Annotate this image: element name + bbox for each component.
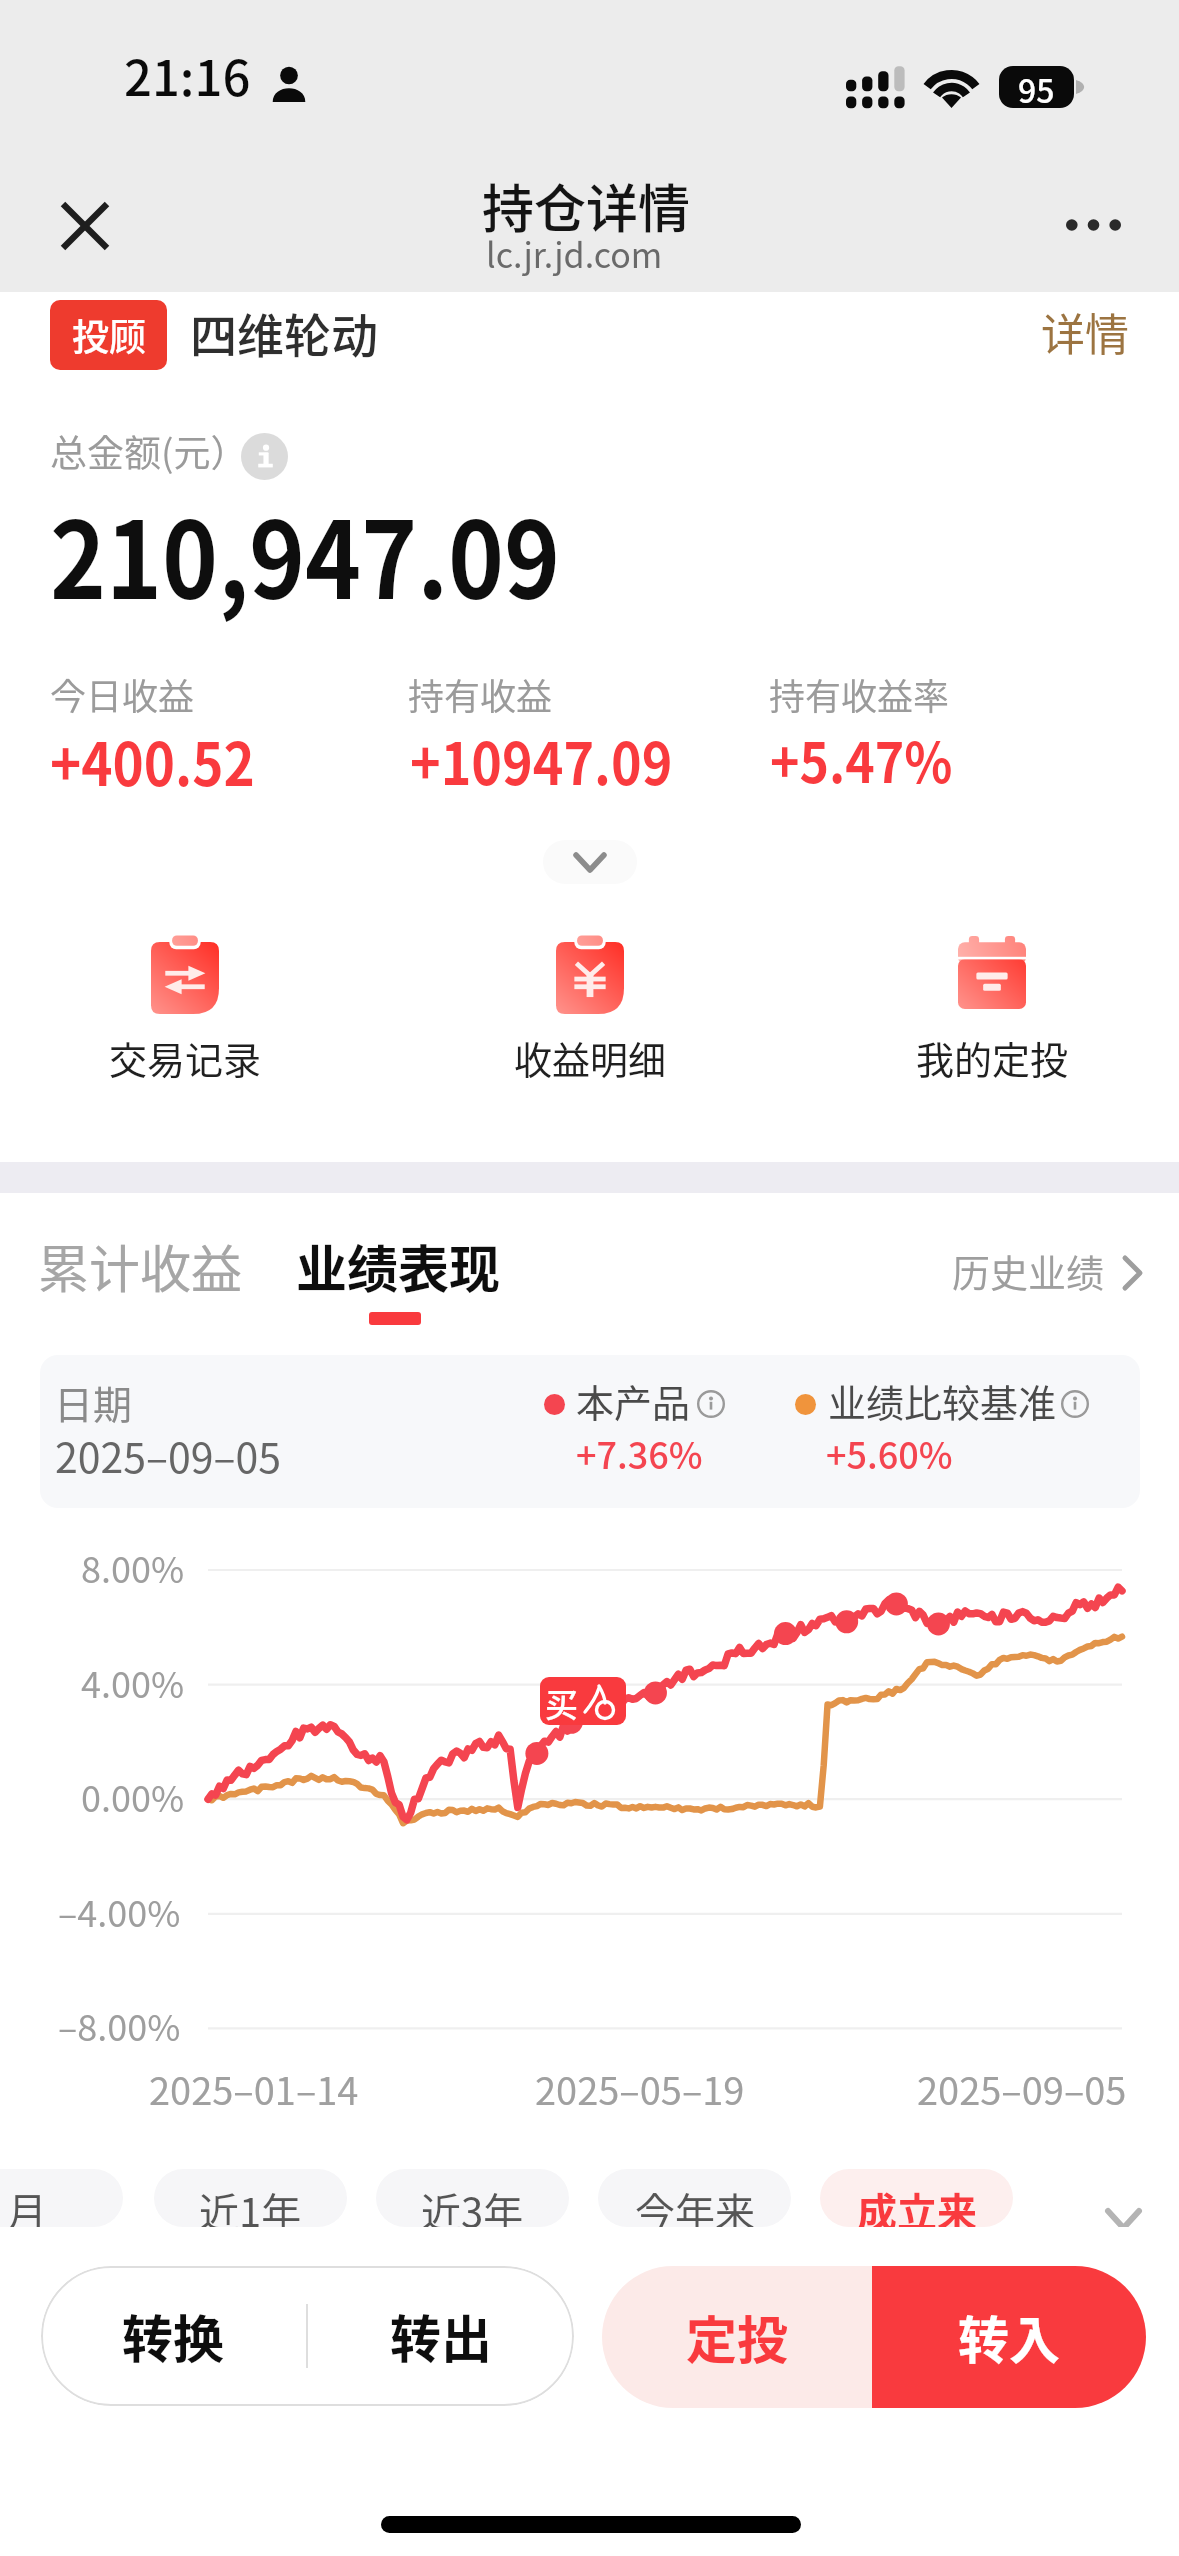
staticText: 业绩比较基准	[828, 1373, 1057, 1428]
staticText: 成立来	[857, 2181, 977, 2227]
staticText: 2025–09–05	[917, 2061, 1127, 2116]
staticText: 投顾	[72, 308, 146, 362]
staticText: –4.00%	[58, 1885, 181, 1937]
button[interactable]: 成立来	[820, 2169, 1013, 2227]
staticText: 业绩表现	[296, 1229, 501, 1303]
staticText: 95	[1018, 66, 1055, 108]
button[interactable]: 转换	[41, 2266, 306, 2406]
staticText: 2025–01–14	[149, 2061, 359, 2116]
staticText: 转出	[390, 2299, 493, 2373]
staticText: 定投	[686, 2300, 789, 2374]
staticText: 2025–05–19	[535, 2061, 745, 2116]
button[interactable]: 近1年	[154, 2169, 347, 2227]
button[interactable]: 转入	[872, 2266, 1146, 2408]
staticText: 四维轮动	[190, 298, 378, 366]
staticText: lc.jr.jd.com	[486, 229, 663, 278]
button[interactable]: 业绩表现	[288, 1221, 506, 1331]
staticText: 转换	[122, 2299, 225, 2373]
button[interactable]: Info about total amount	[241, 433, 288, 480]
staticText: 累计收益	[38, 1229, 243, 1303]
staticText: 收益明细	[514, 1030, 667, 1085]
staticText: 持有收益率	[769, 668, 950, 720]
button[interactable]: More options	[1045, 177, 1141, 273]
button[interactable]: 定投	[602, 2266, 872, 2408]
staticText: –8.00%	[58, 1999, 181, 2051]
staticText: 2025–09–05	[55, 1425, 281, 1484]
button[interactable]: 详情	[1019, 296, 1147, 376]
staticText: 今日收益	[50, 668, 195, 720]
staticText: 0.00%	[81, 1770, 185, 1822]
staticText: +5.47%	[770, 718, 953, 799]
staticText: 日期	[54, 1374, 133, 1430]
button[interactable]: 今年来	[598, 2169, 791, 2227]
staticText: 8.00%	[81, 1541, 185, 1593]
button[interactable]: 转出	[308, 2266, 574, 2406]
staticText: 总金额(元）	[50, 424, 248, 478]
staticText: 交易记录	[109, 1030, 262, 1085]
button[interactable]: More periods	[1091, 2190, 1155, 2227]
staticText: 本产品	[576, 1373, 691, 1428]
staticText: 近1年	[199, 2181, 302, 2227]
staticText: 买	[545, 1679, 578, 1725]
staticText: 近3年	[421, 2181, 524, 2227]
staticText: +5.60%	[826, 1427, 953, 1479]
button[interactable]: 历史业绩	[940, 1242, 1112, 1306]
staticText: 4.00%	[81, 1656, 185, 1708]
button[interactable]: Close	[37, 178, 133, 274]
staticText: 我的定投	[916, 1030, 1069, 1085]
button[interactable]: 交易记录	[75, 930, 295, 1090]
staticText: +10947.09	[410, 718, 673, 802]
staticText: 持有收益	[408, 668, 553, 720]
staticText: 月	[7, 2181, 47, 2227]
staticText: 今年来	[635, 2181, 755, 2227]
staticText: 21:16	[124, 39, 251, 110]
button[interactable]: 近3年	[376, 2169, 569, 2227]
staticText: 210,947.09	[50, 476, 561, 631]
staticText: 详情	[1041, 300, 1129, 364]
staticText: 转入	[958, 2300, 1061, 2374]
button[interactable]: 收益明细	[480, 930, 700, 1090]
button[interactable]: Expand details	[543, 840, 637, 884]
button[interactable]: 投顾	[50, 295, 355, 375]
staticText: +7.36%	[576, 1427, 703, 1479]
staticText: 历史业绩	[952, 1243, 1105, 1298]
button[interactable]: 月	[0, 2169, 123, 2227]
staticText: 持仓详情	[482, 168, 691, 243]
staticText: +400.52	[50, 718, 255, 804]
button[interactable]: 我的定投	[882, 930, 1102, 1090]
button[interactable]: 累计收益	[30, 1221, 248, 1331]
